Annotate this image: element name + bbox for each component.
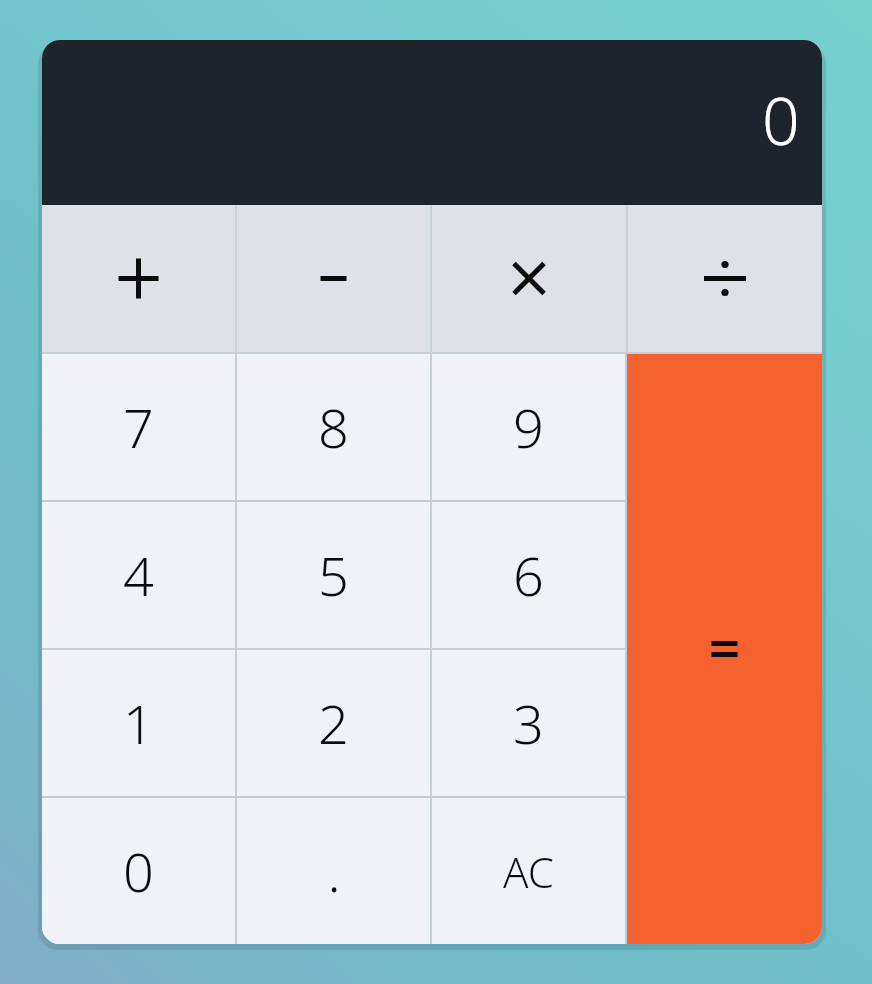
button[interactable]: 9 bbox=[432, 354, 625, 500]
button[interactable]: Subtract bbox=[237, 205, 430, 352]
button[interactable]: 6 bbox=[432, 502, 625, 648]
staticText: 9 bbox=[513, 390, 544, 464]
staticText: 6 bbox=[513, 538, 544, 612]
staticText: 1 bbox=[123, 686, 154, 760]
staticText: 0 bbox=[762, 74, 800, 164]
staticText: 8 bbox=[318, 390, 349, 464]
button[interactable]: 7 bbox=[42, 354, 235, 500]
button[interactable]: . bbox=[237, 798, 430, 944]
button[interactable]: 1 bbox=[42, 650, 235, 796]
button[interactable]: 4 bbox=[42, 502, 235, 648]
staticText: 4 bbox=[123, 538, 154, 612]
staticText: AC bbox=[503, 843, 554, 900]
button[interactable]: Multiply bbox=[432, 205, 626, 352]
button[interactable]: AC bbox=[432, 798, 625, 944]
button[interactable]: Add bbox=[42, 205, 235, 352]
staticText: 7 bbox=[123, 390, 154, 464]
button[interactable]: 0 bbox=[42, 798, 235, 944]
button[interactable]: 5 bbox=[237, 502, 430, 648]
staticText: 3 bbox=[513, 686, 544, 760]
staticText: 2 bbox=[318, 686, 349, 760]
button[interactable]: Divide bbox=[628, 205, 822, 352]
button[interactable]: 2 bbox=[237, 650, 430, 796]
staticText: . bbox=[327, 834, 341, 908]
button[interactable]: 8 bbox=[237, 354, 430, 500]
button[interactable]: 3 bbox=[432, 650, 625, 796]
button[interactable]: Equals bbox=[627, 354, 822, 944]
staticText: 0 bbox=[123, 834, 154, 908]
staticText: 5 bbox=[318, 538, 349, 612]
